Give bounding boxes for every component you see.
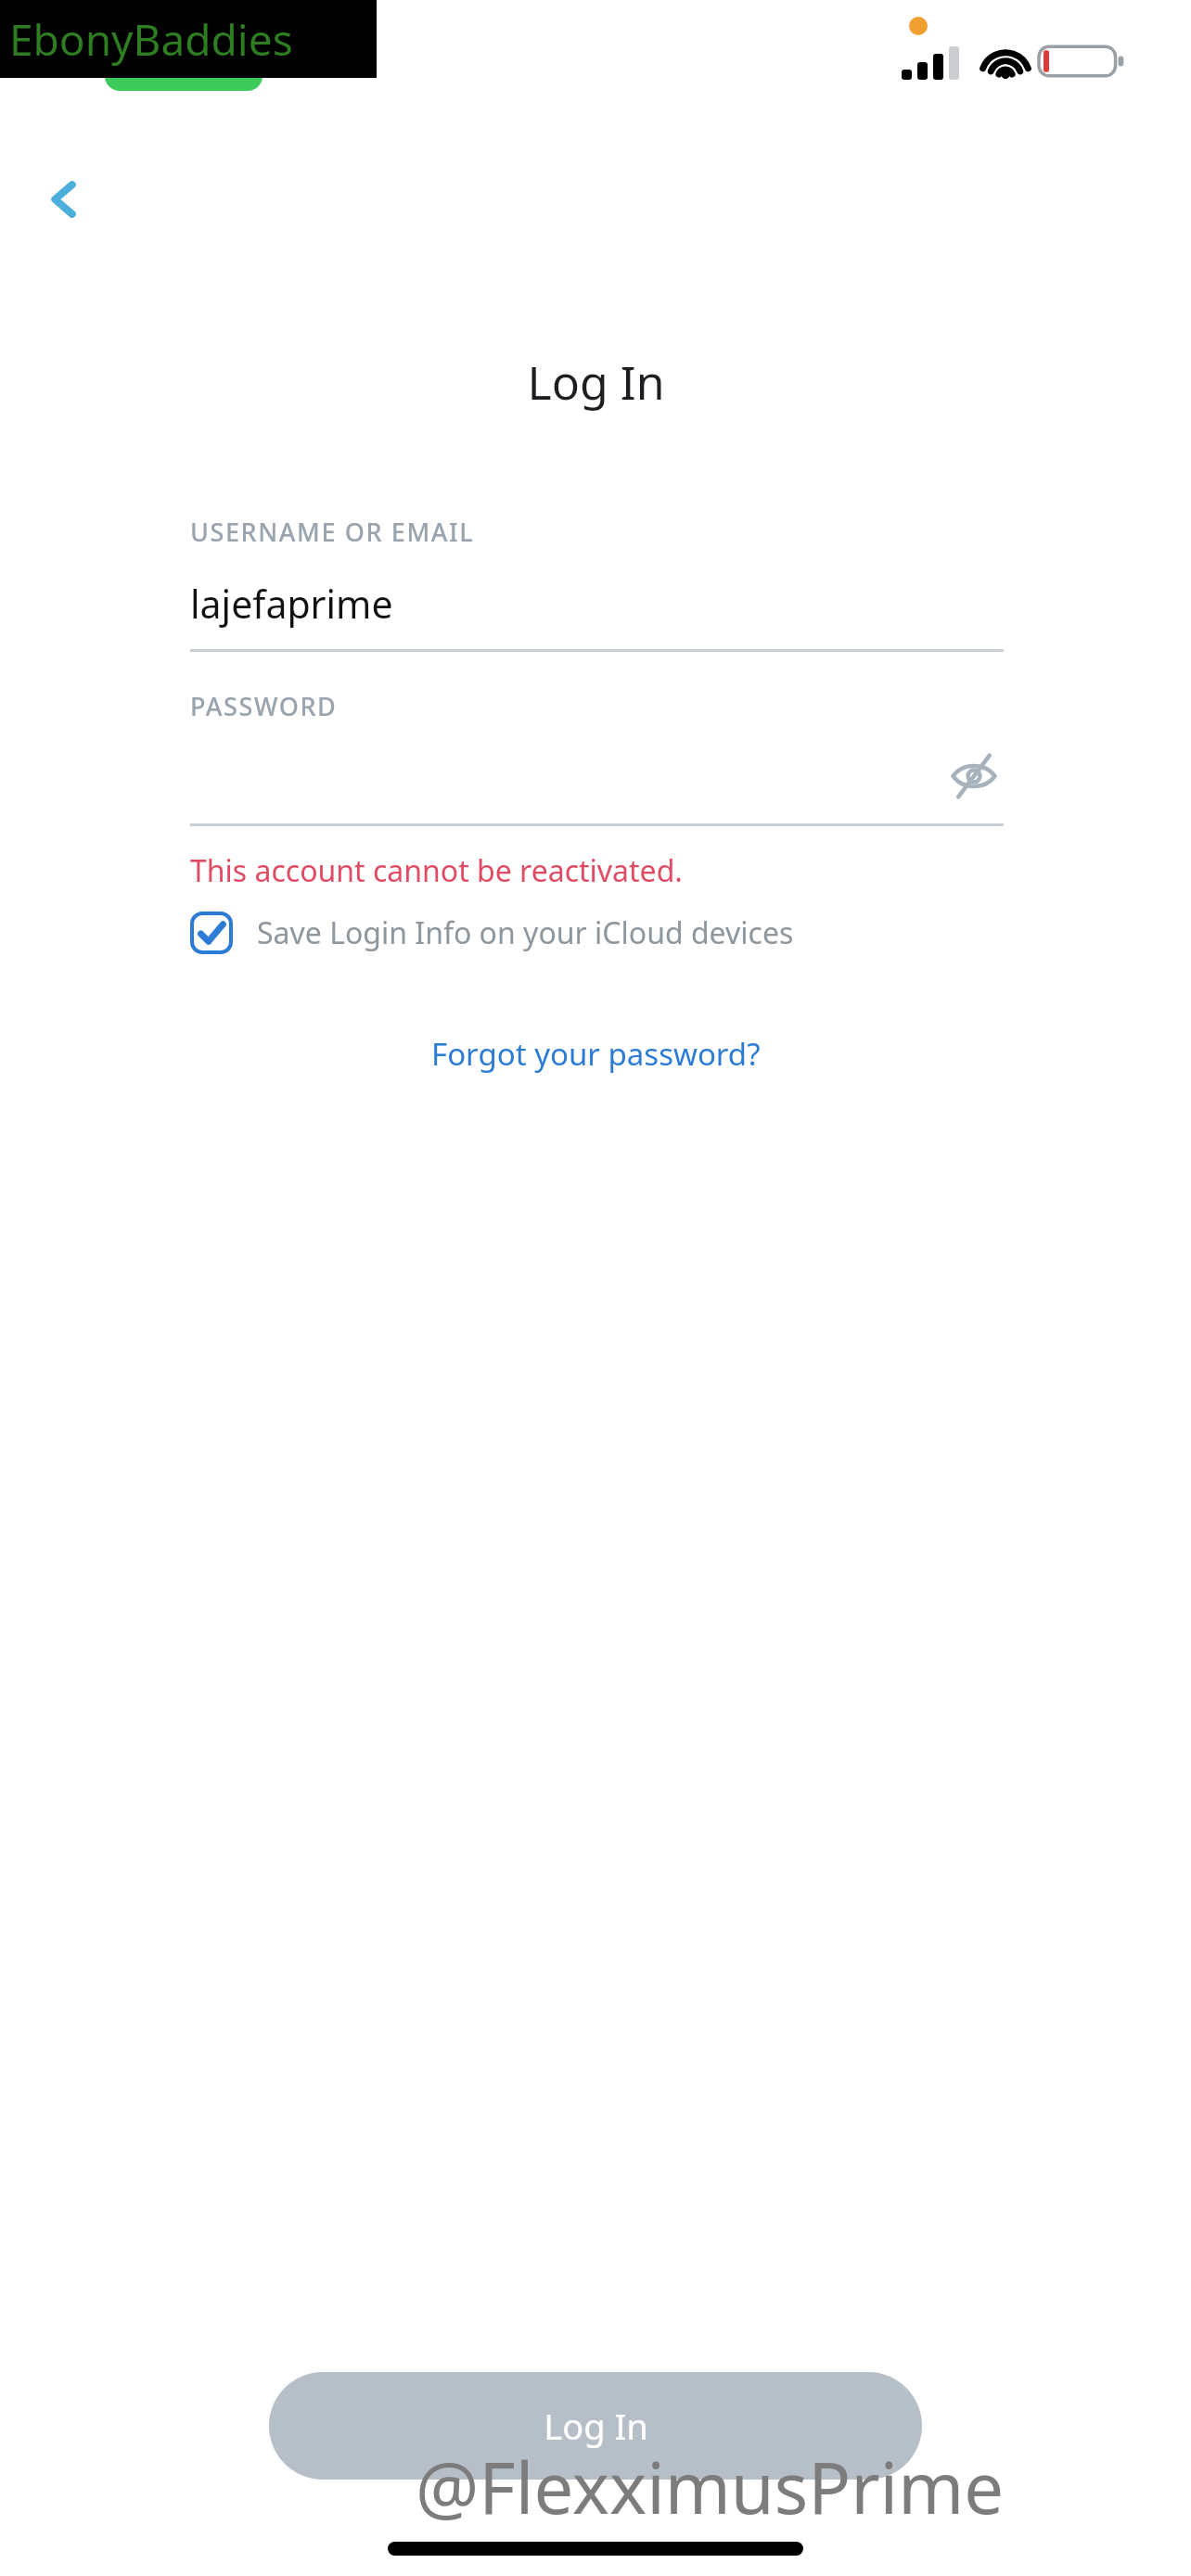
- staticText: Log In: [527, 351, 665, 414]
- button[interactable]: Back: [22, 158, 106, 241]
- staticText: Log In: [544, 2402, 648, 2450]
- button[interactable]: Log In: [269, 2372, 922, 2480]
- staticText: Forgot your password?: [431, 1033, 761, 1075]
- staticText: lajefaprime: [190, 578, 393, 630]
- staticText: This account cannot be reactivated.: [190, 850, 683, 891]
- staticText: @FlexximusPrime: [416, 2439, 1005, 2535]
- staticText: EbonyBaddies: [9, 10, 293, 69]
- staticText: PASSWORD: [190, 689, 338, 723]
- button[interactable]: Show password: [944, 746, 1004, 806]
- staticText: USERNAME OR EMAIL: [190, 515, 475, 549]
- button[interactable]: lajefaprime: [190, 571, 1004, 636]
- staticText: Save Login Info on your iCloud devices: [257, 912, 794, 953]
- button[interactable]: Save Login Info on your iCloud devices: [190, 912, 794, 954]
- button[interactable]: Forgot your password?: [431, 1033, 761, 1075]
- button[interactable]: Show password: [190, 742, 1004, 810]
- staticText: EbonyBaddies: [9, 10, 293, 69]
